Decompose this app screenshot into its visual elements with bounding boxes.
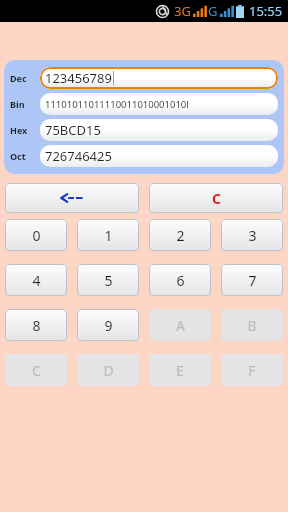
staticText: 11101011011110011010001010l <box>45 98 189 111</box>
staticText: 0 <box>32 226 41 245</box>
button[interactable]: key <box>5 183 139 213</box>
staticText: Oct <box>10 150 26 162</box>
staticText: C <box>212 189 221 208</box>
staticText: 3G <box>174 2 191 20</box>
other: Backspace <box>60 192 84 204</box>
staticText: F <box>248 361 256 380</box>
staticText: 1 <box>104 226 113 245</box>
button[interactable]: 3 <box>221 219 283 251</box>
staticText: 6 <box>176 271 185 290</box>
staticText: G <box>208 2 218 20</box>
staticText: B <box>247 316 257 335</box>
staticText: 5 <box>104 271 113 290</box>
button[interactable]: 7 <box>221 264 283 296</box>
staticText: 75BCD15 <box>45 121 101 139</box>
staticText: 9 <box>104 316 113 335</box>
staticText: C <box>32 361 41 380</box>
staticText: 123456789 <box>45 69 112 87</box>
button[interactable]: 5 <box>77 264 139 296</box>
button[interactable]: 8 <box>5 309 67 341</box>
staticText: A <box>176 316 185 335</box>
button[interactable]: 2 <box>149 219 211 251</box>
button[interactable]: 11101011011110011010001010l <box>40 93 278 115</box>
button[interactable]: 6 <box>149 264 211 296</box>
staticText: 4 <box>32 271 41 290</box>
button[interactable]: 9 <box>77 309 139 341</box>
button[interactable]: key <box>149 183 283 213</box>
button[interactable]: 4 <box>5 264 67 296</box>
staticText: 3 <box>248 226 257 245</box>
staticText: 7 <box>248 271 257 290</box>
staticText: D <box>103 361 114 380</box>
staticText: Hex <box>10 124 28 136</box>
button[interactable]: 123456789 <box>40 67 278 89</box>
staticText: 726746425 <box>45 147 112 165</box>
button[interactable]: 75BCD15 <box>40 119 278 141</box>
staticText: 15:55 <box>249 2 283 20</box>
button[interactable]: 0 <box>5 219 67 251</box>
staticText: 2 <box>176 226 185 245</box>
staticText: Dec <box>10 72 27 84</box>
button[interactable]: 1 <box>77 219 139 251</box>
button[interactable]: 726746425 <box>40 145 278 167</box>
staticText: E <box>176 361 184 380</box>
staticText: Bin <box>10 98 25 110</box>
staticText: 8 <box>32 316 41 335</box>
